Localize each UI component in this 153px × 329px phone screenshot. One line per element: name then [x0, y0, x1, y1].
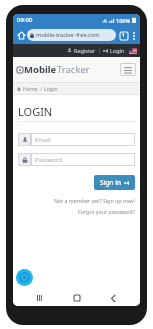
button[interactable]: Not a member yet? Sign up now!	[18, 197, 135, 204]
staticText: /	[40, 85, 42, 92]
button[interactable]: Tabs	[118, 30, 129, 41]
button[interactable]: Mobile	[17, 63, 90, 76]
button[interactable]: Back	[104, 290, 122, 306]
staticText: Forgot your password?	[78, 208, 135, 215]
staticText: Password	[35, 156, 63, 164]
staticText: Login	[110, 47, 125, 54]
staticText: Login	[44, 85, 58, 92]
button[interactable]: Support chat	[16, 269, 33, 286]
staticText: Email	[35, 136, 51, 144]
button[interactable]: Email	[31, 133, 135, 146]
button[interactable]: Language	[129, 48, 137, 54]
staticText: LOGIN	[18, 104, 53, 119]
button[interactable]: Sign in	[94, 175, 135, 190]
staticText: Sign in	[100, 178, 121, 187]
button[interactable]: Login	[100, 44, 128, 57]
button[interactable]: Forgot your password?	[18, 208, 135, 215]
button[interactable]: Menu	[120, 63, 136, 76]
staticText: 09:00	[17, 16, 33, 24]
button[interactable]: More options	[129, 31, 138, 40]
button[interactable]: Recents	[31, 290, 49, 306]
button[interactable]: Home	[15, 29, 27, 41]
staticText: Mobile	[24, 63, 57, 76]
button[interactable]: mobile-tracker-free.com	[27, 29, 116, 41]
staticText: Register	[74, 47, 96, 54]
button[interactable]: Password	[31, 153, 135, 166]
staticText: 100%	[116, 17, 131, 24]
staticText: Tracker	[57, 63, 90, 76]
button[interactable]: Home	[23, 85, 38, 92]
button[interactable]: Register	[64, 44, 99, 57]
staticText: Not a member yet? Sign up now!	[54, 197, 135, 204]
staticText: 1	[122, 32, 125, 39]
staticText: mobile-tracker-free.com	[36, 31, 100, 39]
staticText: Home	[23, 85, 38, 92]
button[interactable]: Home	[68, 290, 86, 306]
